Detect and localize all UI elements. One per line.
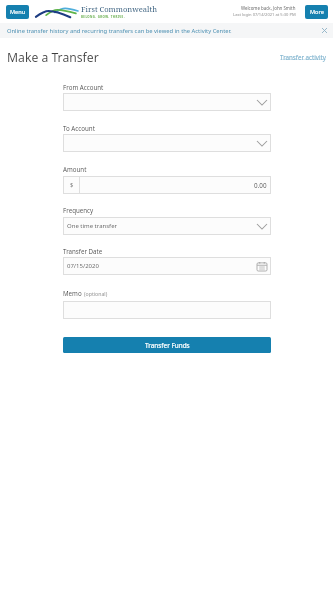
- button[interactable]: Menu: [6, 5, 29, 19]
- staticText: Online transfer history and recurring tr…: [7, 27, 232, 35]
- staticText: Frequency: [63, 206, 94, 214]
- staticText: Amount: [63, 165, 87, 173]
- staticText: Menu: [10, 8, 26, 16]
- staticText: Transfer activity: [280, 53, 327, 61]
- staticText: BELONG. GROW. THRIVE.: [81, 15, 125, 19]
- staticText: Last login 07/14/2021 at 5:30 PM: [233, 12, 296, 18]
- button[interactable]: One time transfer: [63, 217, 271, 235]
- staticText: Transfer Funds: [145, 341, 190, 350]
- staticText: From Account: [63, 83, 104, 91]
- staticText: (optional): [84, 290, 108, 297]
- button[interactable]: [63, 301, 271, 319]
- staticText: To Account: [63, 124, 95, 132]
- staticText: First Commonwealth: [81, 4, 157, 14]
- staticText: Memo: [63, 289, 82, 297]
- staticText: Welcome back, John Smith: [241, 5, 296, 11]
- button[interactable]: 07/15/2020: [63, 257, 271, 275]
- button[interactable]: More: [305, 5, 328, 19]
- button[interactable]: Transfer activity: [280, 53, 327, 61]
- staticText: $: [70, 181, 74, 189]
- staticText: Transfer Date: [63, 247, 103, 255]
- staticText: 07/15/2020: [67, 262, 99, 270]
- button[interactable]: $: [63, 176, 271, 194]
- staticText: More: [310, 8, 324, 16]
- button[interactable]: [63, 93, 271, 111]
- button[interactable]: [63, 134, 271, 152]
- button[interactable]: Dismiss notification: [319, 25, 330, 36]
- button[interactable]: Transfer Funds: [63, 337, 271, 353]
- staticText: 0.00: [254, 181, 267, 190]
- staticText: One time transfer: [67, 222, 118, 230]
- staticText: Make a Transfer: [7, 49, 99, 66]
